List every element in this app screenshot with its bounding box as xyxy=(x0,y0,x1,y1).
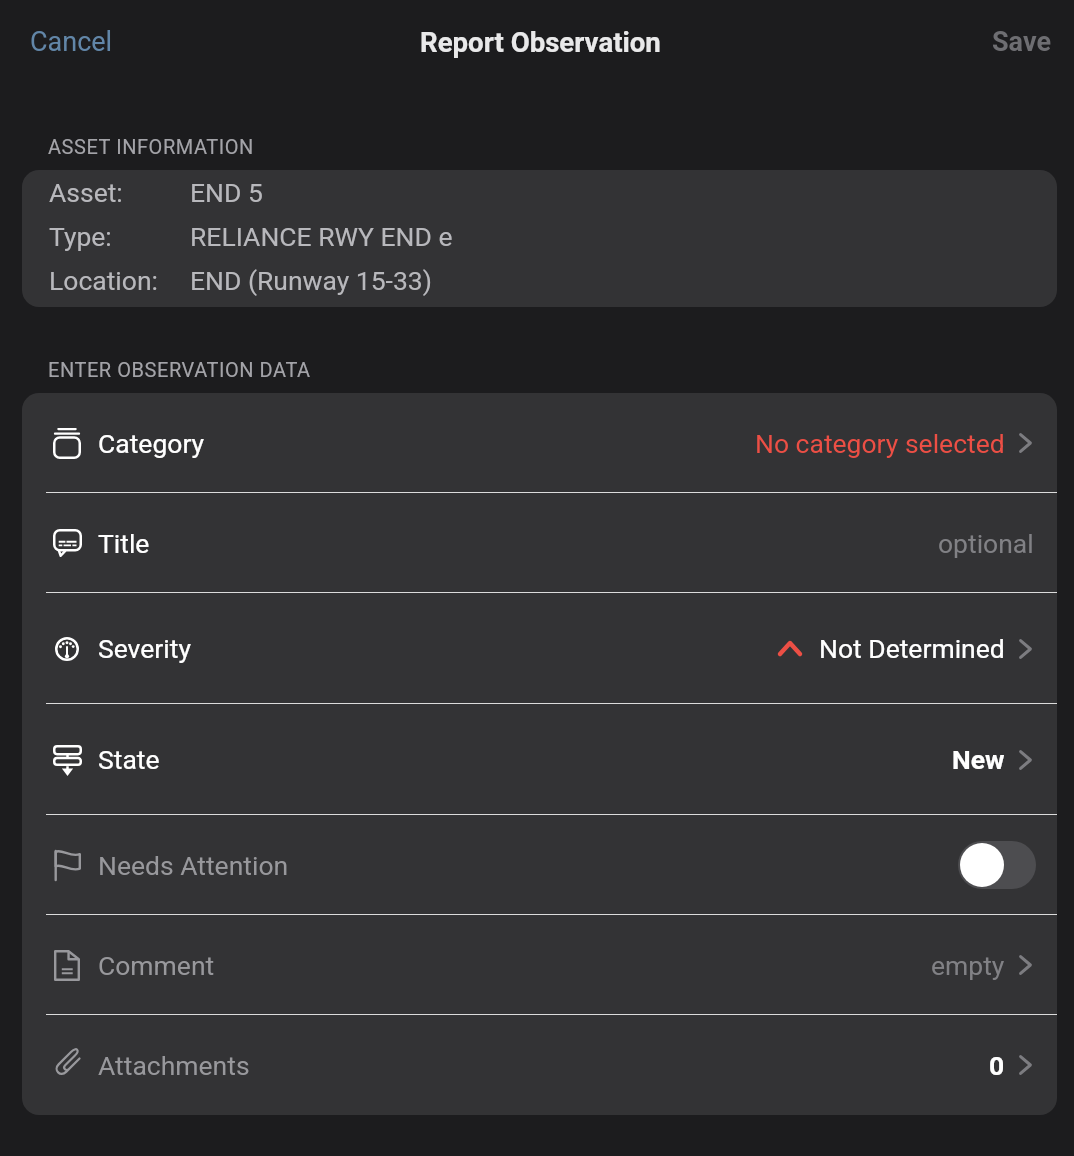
staticText: Asset: xyxy=(49,177,123,208)
button[interactable]: Needs Attention toggle xyxy=(958,841,1036,889)
staticText: Save xyxy=(992,26,1051,58)
button[interactable]: Needs Attention xyxy=(22,815,1057,915)
staticText: Title xyxy=(98,528,150,559)
staticText: Type: xyxy=(49,221,112,252)
staticText: ENTER OBSERVATION DATA xyxy=(48,358,311,381)
staticText: Comment xyxy=(98,950,215,981)
staticText: optional xyxy=(938,528,1034,559)
other: Open xyxy=(1019,433,1032,453)
button[interactable]: State xyxy=(22,704,1057,815)
button[interactable]: Cancel xyxy=(0,16,133,68)
staticText: No category selected xyxy=(755,428,1005,459)
staticText: END 5 xyxy=(190,177,263,208)
button[interactable]: Attachments xyxy=(22,1015,1057,1115)
staticText: Not Determined xyxy=(819,633,1005,664)
button[interactable]: Severity xyxy=(22,593,1057,704)
staticText: END (Runway 15-33) xyxy=(190,265,432,296)
button[interactable]: Title xyxy=(22,493,1057,593)
other: Open xyxy=(1019,955,1032,975)
staticText: State xyxy=(98,744,160,775)
staticText: empty xyxy=(931,950,1005,981)
button[interactable]: Comment xyxy=(22,915,1057,1015)
staticText: Cancel xyxy=(30,26,113,58)
staticText: 0 xyxy=(989,1050,1005,1081)
other: Open xyxy=(1019,1055,1032,1075)
staticText: New xyxy=(952,744,1005,775)
staticText: ASSET INFORMATION xyxy=(48,135,254,158)
other: Open xyxy=(1019,639,1032,659)
staticText: Severity xyxy=(98,633,191,664)
staticText: Location: xyxy=(49,265,158,296)
staticText: Report Observation xyxy=(420,26,661,58)
button[interactable]: Category xyxy=(22,393,1057,493)
staticText: Needs Attention xyxy=(98,850,289,881)
staticText: Category xyxy=(98,428,205,459)
button[interactable]: Save xyxy=(972,16,1074,68)
other: Open xyxy=(1019,750,1032,770)
staticText: Attachments xyxy=(98,1050,250,1081)
staticText: RELIANCE RWY END e xyxy=(190,221,453,252)
